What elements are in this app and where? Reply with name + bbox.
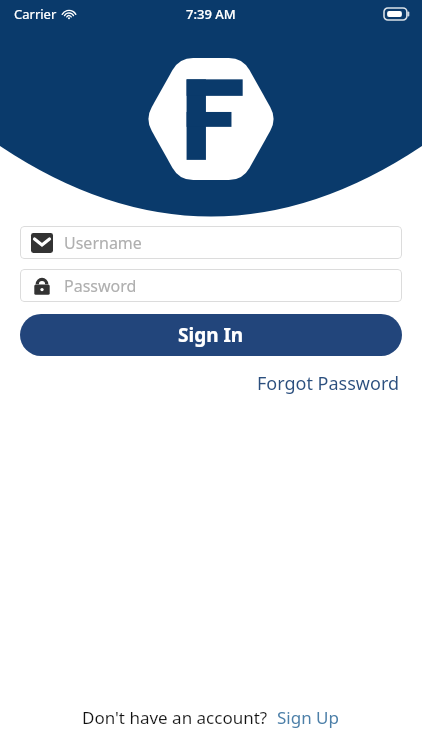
button[interactable]: Sign Up — [275, 703, 341, 732]
staticText: Carrier — [14, 5, 57, 23]
staticText: Password — [64, 275, 137, 297]
staticText: Don't have an account? — [82, 706, 268, 729]
button[interactable]: Sign In — [20, 314, 402, 356]
staticText: 7:39 AM — [186, 5, 236, 23]
button[interactable]: Forgot Password — [255, 368, 402, 399]
button[interactable]: Password — [20, 269, 402, 302]
staticText: Sign Up — [277, 706, 339, 729]
staticText: Forgot Password — [257, 371, 400, 396]
button[interactable]: Username — [20, 226, 402, 259]
staticText: Username — [64, 232, 142, 254]
staticText: Sign In — [178, 322, 244, 348]
